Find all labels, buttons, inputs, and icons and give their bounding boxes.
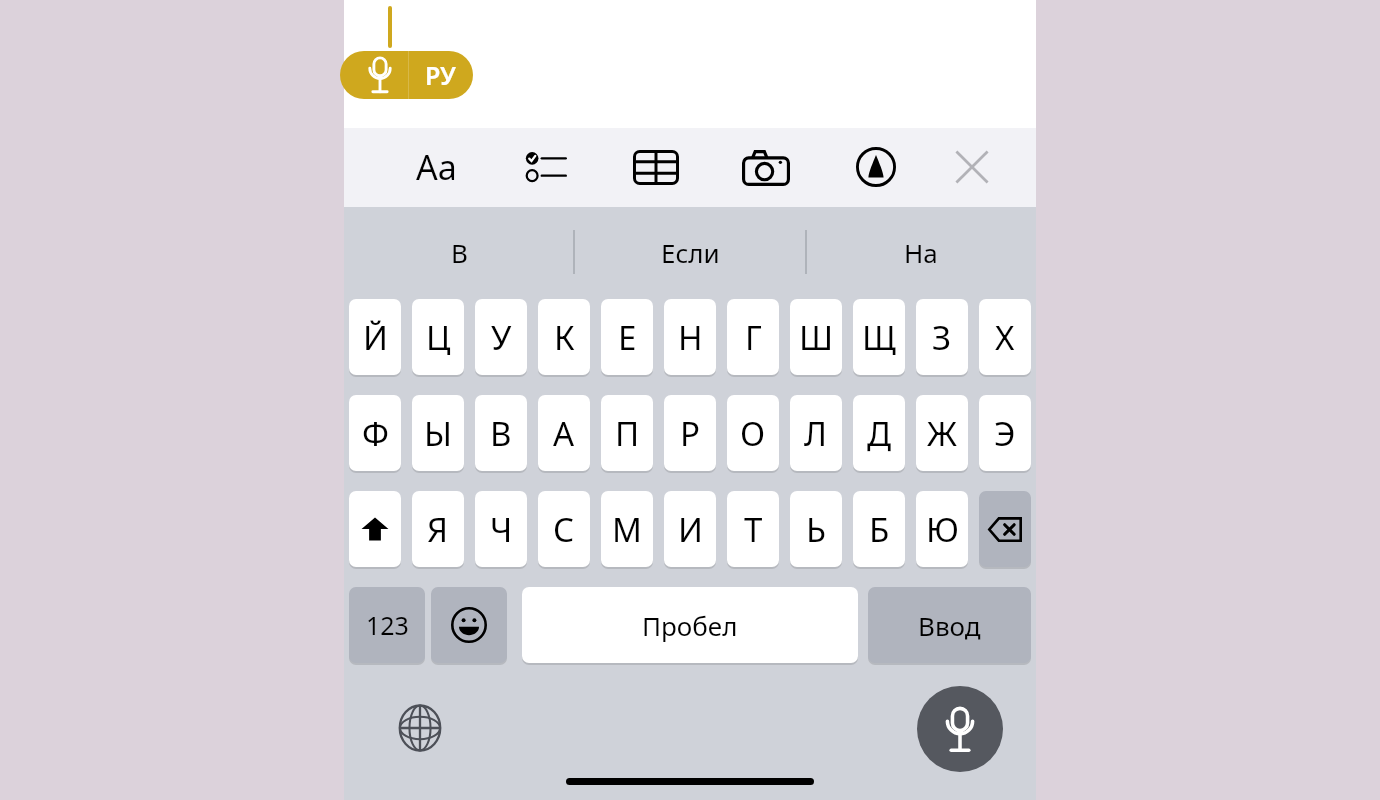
button[interactable]: К — [538, 299, 590, 375]
button[interactable]: Checklist — [514, 144, 578, 190]
button[interactable]: Ч — [475, 491, 527, 567]
button[interactable]: Backspace — [979, 491, 1031, 567]
button[interactable]: Щ — [853, 299, 905, 375]
button[interactable]: Shift — [349, 491, 401, 567]
button[interactable]: М — [601, 491, 653, 567]
button[interactable]: Е — [601, 299, 653, 375]
button[interactable]: Ь — [790, 491, 842, 567]
staticText: Е — [618, 315, 637, 360]
button[interactable]: Я — [412, 491, 464, 567]
button[interactable]: Х — [979, 299, 1031, 375]
button[interactable]: У — [475, 299, 527, 375]
staticText: Ф — [362, 411, 389, 456]
staticText: РУ — [425, 58, 456, 92]
staticText: Г — [745, 315, 762, 360]
button[interactable]: Ц — [412, 299, 464, 375]
staticText: Ю — [926, 507, 959, 552]
staticText: Ш — [799, 315, 834, 360]
button[interactable]: На — [805, 207, 1036, 297]
staticText: И — [678, 507, 703, 552]
button[interactable]: Ш — [790, 299, 842, 375]
staticText: М — [612, 507, 642, 552]
button[interactable]: Close — [940, 144, 1004, 190]
staticText: З — [932, 315, 952, 360]
button[interactable]: П — [601, 395, 653, 471]
staticText: Ч — [490, 507, 513, 552]
staticText: Пробел — [642, 608, 738, 643]
staticText: Если — [661, 235, 720, 270]
button[interactable]: Б — [853, 491, 905, 567]
button[interactable]: А — [538, 395, 590, 471]
staticText: Б — [869, 507, 890, 552]
staticText: В — [451, 235, 468, 270]
button[interactable]: Camera — [734, 144, 798, 190]
button[interactable]: Switch keyboard language — [392, 700, 448, 756]
button[interactable]: З — [916, 299, 968, 375]
staticText: Ь — [806, 507, 827, 552]
staticText: Щ — [862, 315, 896, 360]
staticText: Э — [994, 411, 1016, 456]
button[interactable]: Ы — [412, 395, 464, 471]
button[interactable]: Т — [727, 491, 779, 567]
button[interactable]: И — [664, 491, 716, 567]
button[interactable]: Table — [624, 144, 688, 190]
button[interactable]: Dictation active, Russian — [340, 51, 473, 99]
button[interactable]: Л — [790, 395, 842, 471]
staticText: О — [740, 411, 766, 456]
staticText: В — [490, 411, 512, 456]
button[interactable]: Ю — [916, 491, 968, 567]
button[interactable]: Text format — [404, 144, 468, 190]
staticText: Д — [867, 411, 892, 456]
staticText: А — [553, 411, 575, 456]
button[interactable]: Пробел — [522, 587, 858, 663]
staticText: П — [615, 411, 640, 456]
button[interactable]: Ф — [349, 395, 401, 471]
staticText: У — [491, 315, 512, 360]
button[interactable]: Ввод — [868, 587, 1031, 663]
button[interactable]: В — [344, 207, 575, 297]
staticText: Я — [427, 507, 449, 552]
staticText: Ц — [426, 315, 451, 360]
staticText: Т — [744, 507, 763, 552]
button[interactable]: В — [475, 395, 527, 471]
button[interactable]: Н — [664, 299, 716, 375]
button[interactable]: Dictate — [917, 686, 1003, 772]
staticText: Л — [804, 411, 828, 456]
button[interactable]: Д — [853, 395, 905, 471]
button[interactable]: Р — [664, 395, 716, 471]
staticText: С — [553, 507, 575, 552]
staticText: Х — [995, 315, 1015, 360]
staticText: Н — [678, 315, 703, 360]
button[interactable]: О — [727, 395, 779, 471]
button[interactable]: 123 — [349, 587, 425, 663]
button[interactable]: Emoji — [431, 587, 507, 663]
button[interactable]: Г — [727, 299, 779, 375]
staticText: К — [554, 315, 575, 360]
staticText: Ж — [927, 411, 957, 456]
button[interactable]: Markup — [844, 144, 908, 190]
button[interactable]: Й — [349, 299, 401, 375]
button[interactable]: Э — [979, 395, 1031, 471]
button[interactable]: С — [538, 491, 590, 567]
staticText: 123 — [366, 608, 409, 642]
staticText: Ы — [424, 411, 453, 456]
staticText: Й — [363, 315, 388, 360]
staticText: Р — [680, 411, 700, 456]
staticText: На — [904, 235, 938, 270]
staticText: Aa — [416, 144, 457, 190]
staticText: Ввод — [918, 608, 981, 643]
button[interactable]: Если — [575, 207, 806, 297]
button[interactable]: Ж — [916, 395, 968, 471]
